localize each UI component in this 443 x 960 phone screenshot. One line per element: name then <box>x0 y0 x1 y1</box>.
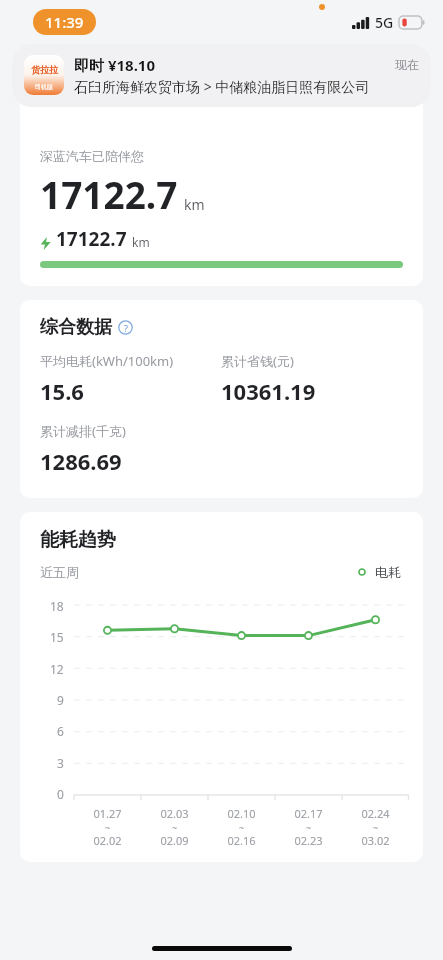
staticText: 12 <box>50 661 64 677</box>
staticText: 6 <box>57 723 64 739</box>
staticText: ? <box>124 322 128 334</box>
staticText: 10361.19 <box>221 376 316 406</box>
staticText: 02.23 <box>294 833 323 848</box>
staticText: 货拉拉 <box>31 64 58 75</box>
staticText: 02.16 <box>227 833 256 848</box>
button[interactable]: 能耗趋势 <box>20 512 423 862</box>
staticText: 02.24 <box>361 806 390 821</box>
staticText: 02.17 <box>294 806 323 821</box>
staticText: 03.02 <box>361 833 390 848</box>
staticText: 17122.7 <box>40 169 178 219</box>
button[interactable]: 货拉拉 <box>12 44 431 107</box>
staticText: ~ <box>306 821 312 833</box>
staticText: ~ <box>239 821 245 833</box>
staticText: 综合数据 <box>40 316 112 339</box>
staticText: 深蓝汽车已陪伴您 <box>40 148 144 164</box>
staticText: 即时 ¥18.10 <box>74 55 156 75</box>
staticText: ~ <box>172 821 178 833</box>
staticText: 01.27 <box>93 806 122 821</box>
staticText: 石臼所海鲜农贸市场 > 中储粮油脂日照有限公司 <box>74 77 370 96</box>
staticText: 近五周 <box>40 564 79 580</box>
staticText: 02.09 <box>160 833 189 848</box>
staticText: 电耗 <box>375 564 401 580</box>
staticText: 15.6 <box>40 376 84 406</box>
staticText: 3 <box>57 755 64 771</box>
staticText: 司机版 <box>35 83 53 91</box>
staticText: ~ <box>105 821 111 833</box>
staticText: 平均电耗(kWh/100km) <box>40 352 174 370</box>
staticText: 02.10 <box>227 806 256 821</box>
staticText: 5G <box>375 13 394 32</box>
staticText: 17122.7 <box>56 226 127 252</box>
staticText: km <box>132 234 150 250</box>
button[interactable]: 帮助 <box>118 320 133 335</box>
staticText: ~ <box>373 821 379 833</box>
staticText: 15 <box>50 629 64 645</box>
staticText: km <box>184 195 205 214</box>
staticText: 累计减排(千克) <box>40 422 126 440</box>
staticText: 现在 <box>395 57 419 72</box>
staticText: 0 <box>57 786 64 802</box>
button[interactable]: 深蓝汽车已陪伴您 <box>20 52 423 286</box>
staticText: 11:39 <box>45 12 84 32</box>
staticText: 02.02 <box>93 833 122 848</box>
staticText: 02.03 <box>160 806 189 821</box>
staticText: 累计省钱(元) <box>221 352 294 370</box>
staticText: 1286.69 <box>40 446 122 476</box>
staticText: 18 <box>50 598 64 614</box>
staticText: 9 <box>57 692 64 708</box>
staticText: 能耗趋势 <box>40 528 116 552</box>
button[interactable]: 综合数据 <box>20 300 423 498</box>
